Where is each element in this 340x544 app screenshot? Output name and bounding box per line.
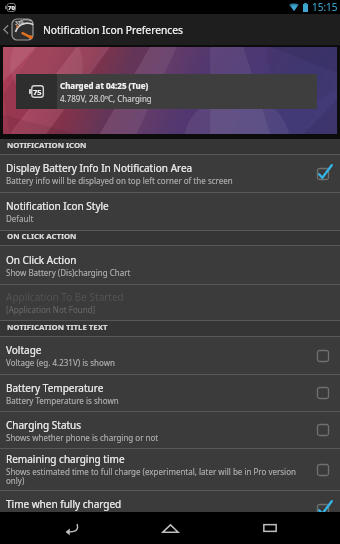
staticText: Remaining charging time — [6, 452, 125, 466]
button[interactable]: On Click Action — [0, 246, 340, 284]
staticText: [Application Not Found] — [6, 304, 96, 315]
staticText: Battery Temperature — [6, 381, 104, 395]
staticText: Show Battery (Dis)charging Chart — [6, 267, 131, 278]
staticText: Voltage — [6, 343, 42, 357]
staticText: Notification Icon Preferences — [43, 23, 184, 37]
staticText: Application To Be Started — [6, 290, 124, 304]
staticText: 70 — [8, 4, 15, 12]
staticText: Charging Status — [6, 418, 82, 432]
staticText: Time when fully charged — [6, 497, 122, 511]
staticText: ON CLICK ACTION — [7, 231, 77, 242]
staticText: Battery info will be displayed on top le… — [6, 175, 233, 186]
staticText: 30% — [15, 20, 24, 26]
button[interactable]: Application To Be Started — [0, 285, 340, 320]
staticText: Shows whether phone is charging or not — [6, 432, 159, 443]
button[interactable]: Battery Temperature — [0, 375, 340, 411]
staticText: Shows estimated time to full charge (exp… — [6, 466, 308, 487]
button[interactable]: Back — [42, 512, 100, 544]
button[interactable]: Navigate up — [0, 14, 36, 45]
button[interactable]: Notification Icon Style — [0, 193, 340, 230]
staticText: Battery Temperature is shown — [6, 395, 119, 406]
staticText: Shows time at which your battery will be… — [6, 511, 209, 522]
staticText: Default — [6, 213, 34, 224]
button[interactable]: Home — [141, 512, 199, 544]
staticText: On Click Action — [6, 253, 77, 267]
staticText: Notification Icon Style — [6, 199, 109, 213]
button[interactable]: Voltage — [0, 337, 340, 374]
button[interactable]: Charging Status — [0, 412, 340, 448]
button[interactable]: Recent apps — [241, 512, 299, 544]
staticText: 4.789V, 28.0ºC, Charging — [60, 93, 152, 104]
staticText: Charged at 04:25 (Tue) — [60, 80, 149, 91]
button[interactable]: Display Battery Info In Notification Are… — [0, 155, 340, 192]
staticText: Voltage (eg. 4.231V) is shown — [6, 357, 115, 368]
staticText: 15:15 — [312, 0, 338, 14]
staticText: NOTIFICATION TITLE TEXT — [7, 322, 108, 333]
button[interactable]: Time when fully charged — [0, 491, 340, 528]
staticText: 75 — [33, 87, 42, 97]
staticText: NOTIFICATION ICON — [7, 140, 87, 151]
button[interactable]: Remaining charging time — [0, 449, 340, 490]
staticText: Display Battery Info In Notification Are… — [6, 161, 193, 175]
